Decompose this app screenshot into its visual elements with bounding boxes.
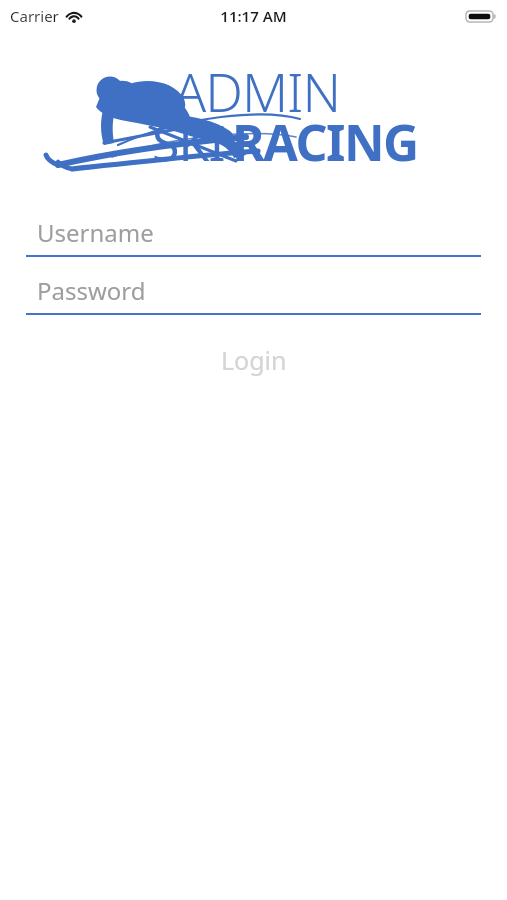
staticText: Password	[37, 274, 146, 307]
staticText: RACING	[232, 108, 418, 176]
staticText: Carrier	[10, 6, 59, 26]
button[interactable]: Login	[0, 336, 507, 384]
button[interactable]: Password	[26, 268, 481, 315]
staticText: Username	[37, 216, 154, 249]
other: Battery full	[466, 9, 496, 24]
button[interactable]: Username	[26, 210, 481, 257]
other: Wi-Fi signal	[65, 9, 83, 23]
staticText: Login	[221, 343, 287, 377]
staticText: ADMIN	[174, 55, 341, 127]
staticText: 11:17 AM	[220, 6, 287, 26]
staticText: SKI	[152, 108, 225, 176]
